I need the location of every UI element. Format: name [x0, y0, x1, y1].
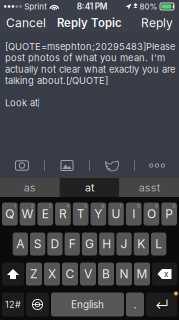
button[interactable]: Return [146, 292, 177, 316]
button[interactable]: . [126, 292, 144, 316]
staticText: Z [30, 267, 38, 281]
staticText: 1 [14, 203, 16, 209]
staticText: 4 [66, 203, 69, 209]
staticText: E [42, 207, 49, 221]
staticText: N [119, 267, 128, 281]
staticText: M [136, 267, 147, 281]
staticText: 5 [84, 203, 87, 209]
button[interactable]: 12# [2, 292, 24, 316]
button[interactable]: Next keyboard [26, 292, 49, 316]
button[interactable]: Cancel [0, 12, 52, 34]
staticText: asst [139, 181, 160, 194]
button[interactable]: H [99, 232, 114, 255]
button[interactable]: at [60, 178, 119, 197]
staticText: 80% [139, 2, 157, 11]
staticText: C [65, 267, 74, 281]
button[interactable]: Photo library [45, 159, 89, 171]
staticText: . [133, 298, 136, 311]
staticText: English [71, 298, 104, 311]
button[interactable]: K [134, 232, 149, 255]
button[interactable]: Y [90, 202, 106, 225]
staticText: 9 [155, 203, 158, 209]
staticText: 6 [102, 203, 105, 209]
button[interactable]: M [134, 262, 150, 285]
button[interactable]: Camera [0, 159, 44, 171]
button[interactable]: X [44, 262, 60, 285]
button[interactable]: Z [26, 262, 42, 285]
staticText: 7 [119, 203, 122, 209]
button[interactable]: I [126, 202, 142, 225]
button[interactable]: R [55, 202, 71, 225]
staticText: 8:41 PM [77, 1, 108, 11]
button[interactable]: W [20, 202, 35, 225]
button[interactable]: N [116, 262, 132, 285]
staticText: W [21, 207, 33, 221]
staticText: K [137, 237, 145, 251]
button[interactable]: A [13, 232, 28, 255]
staticText: H [102, 237, 111, 251]
staticText: R [59, 207, 67, 221]
staticText: S [34, 237, 42, 251]
staticText: as [24, 181, 36, 194]
staticText: [QUOTE=msephton;20295483]Please post pho… [5, 41, 175, 86]
staticText: L [155, 237, 162, 251]
button[interactable]: T [73, 202, 88, 225]
staticText: 2 [31, 203, 34, 209]
staticText: 0 [172, 203, 175, 209]
staticText: U [112, 207, 121, 221]
button[interactable]: Q [2, 202, 18, 225]
button[interactable]: asst [119, 178, 179, 197]
staticText: D [50, 237, 59, 251]
staticText: Cancel [6, 16, 46, 30]
staticText: Reply [141, 16, 173, 30]
staticText: Reply Topic [57, 16, 122, 30]
staticText: F [69, 237, 76, 251]
button[interactable]: Delete [152, 262, 177, 285]
staticText: Q [5, 207, 14, 221]
staticText: I [132, 207, 135, 221]
button[interactable]: E [37, 202, 53, 225]
staticText: T [77, 207, 85, 221]
button[interactable]: J [116, 232, 132, 255]
button[interactable]: B [98, 262, 114, 285]
staticText: Y [94, 207, 102, 221]
staticText: B [102, 267, 110, 281]
staticText: Sprint [24, 2, 47, 11]
button[interactable]: P [161, 202, 177, 225]
staticText: X [48, 267, 56, 281]
button[interactable]: V [80, 262, 96, 285]
button[interactable]: Twitter [90, 159, 134, 171]
button[interactable]: D [47, 232, 63, 255]
staticText: P [165, 207, 173, 221]
button[interactable]: Shift [2, 262, 24, 285]
staticText: G [85, 237, 94, 251]
button[interactable]: F [65, 232, 80, 255]
button[interactable]: More [135, 159, 179, 171]
staticText: at [85, 181, 94, 194]
staticText: 8 [137, 203, 140, 209]
button[interactable]: English [51, 292, 124, 316]
button[interactable]: O [144, 202, 159, 225]
staticText: A [16, 237, 24, 251]
staticText: 12# [5, 299, 21, 310]
button[interactable]: C [62, 262, 78, 285]
staticText: O [147, 207, 156, 221]
button[interactable]: Reply [135, 12, 179, 34]
staticText: 3 [48, 203, 51, 209]
button[interactable]: G [82, 232, 97, 255]
button[interactable]: as [0, 178, 60, 197]
button[interactable]: S [30, 232, 45, 255]
button[interactable]: L [151, 232, 166, 255]
staticText: V [84, 267, 92, 281]
staticText: Look at [5, 97, 38, 108]
staticText: x [164, 269, 168, 279]
staticText: J [121, 237, 128, 251]
button[interactable]: U [108, 202, 124, 225]
